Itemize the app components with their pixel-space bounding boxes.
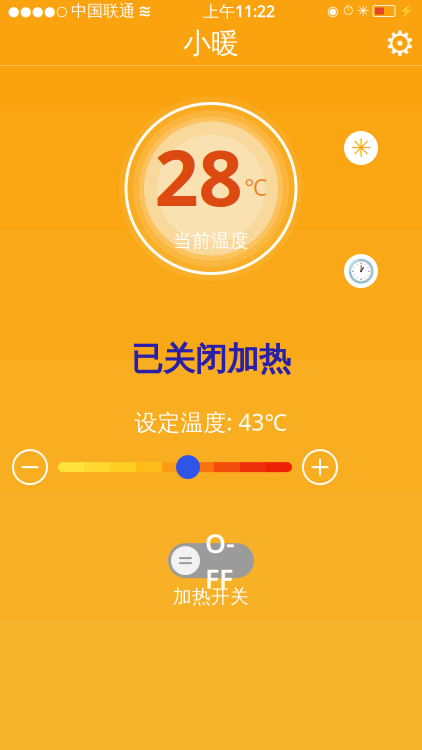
staticText: ●●●●○ bbox=[8, 3, 68, 18]
staticText: OFF bbox=[205, 525, 235, 596]
staticText: 中国联通 bbox=[71, 1, 135, 21]
staticText: 上午11:22 bbox=[203, 0, 275, 22]
staticText: 当前温度 bbox=[173, 229, 249, 252]
button[interactable]: Heater switch, off bbox=[168, 543, 254, 578]
staticText: 设定温度: 43℃ bbox=[134, 407, 287, 437]
staticText: 加热开关 bbox=[173, 585, 249, 608]
staticText: ⚡ bbox=[399, 4, 414, 18]
staticText: 28 bbox=[154, 125, 242, 227]
staticText: ✳ bbox=[357, 3, 369, 19]
button[interactable]: Timer bbox=[344, 254, 378, 288]
staticText: ⚙ bbox=[384, 24, 415, 63]
staticText: ≋ bbox=[138, 2, 151, 20]
staticText: 已关闭加热 bbox=[131, 339, 291, 379]
button[interactable]: Increase temperature bbox=[301, 448, 339, 486]
staticText: ◉ bbox=[327, 3, 339, 18]
staticText: 🕐 bbox=[347, 258, 375, 284]
staticText: ✳ bbox=[350, 134, 371, 162]
staticText: ⏱ bbox=[343, 4, 353, 17]
button[interactable]: Settings bbox=[378, 21, 422, 65]
staticText: 小暖 bbox=[183, 26, 239, 61]
staticText: ℃ bbox=[244, 172, 267, 202]
button[interactable]: Bluetooth bbox=[344, 131, 378, 165]
button[interactable]: Decrease temperature bbox=[11, 448, 49, 486]
